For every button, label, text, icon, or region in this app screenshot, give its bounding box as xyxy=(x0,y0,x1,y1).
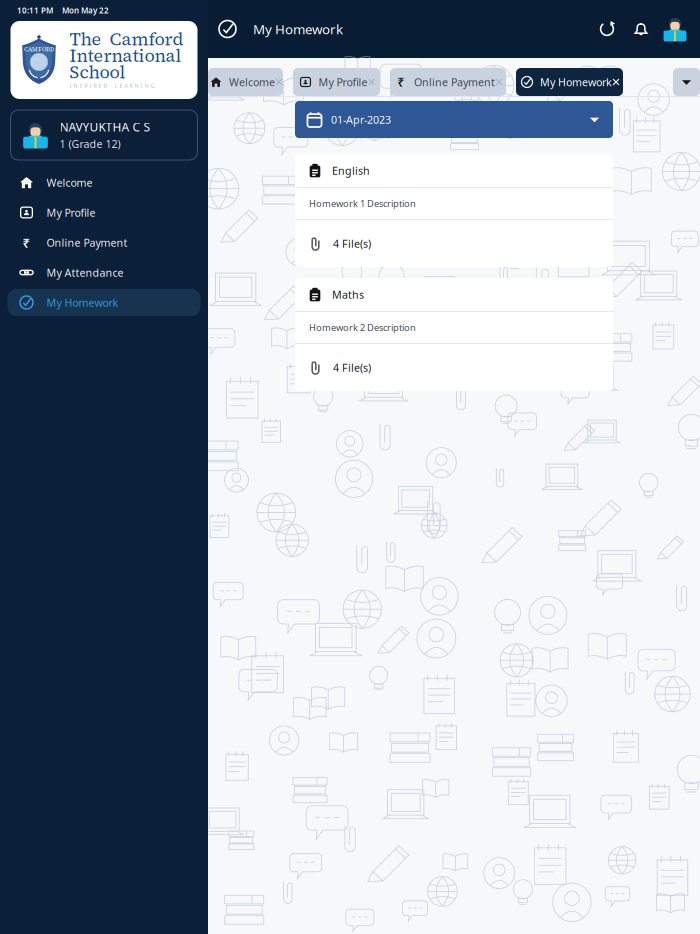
button[interactable]: ₹ xyxy=(390,68,506,96)
staticText: 1 (Grade 12) xyxy=(59,137,120,151)
staticText: Welcome xyxy=(46,175,92,190)
staticText: My Homework xyxy=(46,295,118,310)
button[interactable]: My Homework xyxy=(516,68,623,96)
staticText: Online Payment xyxy=(46,235,127,250)
staticText: International xyxy=(69,43,181,68)
staticText: I N S P I R E D L E A R N I N G xyxy=(69,82,154,89)
button[interactable]: My Profile xyxy=(293,68,380,96)
staticText: Maths xyxy=(332,287,364,302)
button[interactable]: My Attendance xyxy=(7,259,200,286)
staticText: School xyxy=(69,60,125,84)
staticText: Online Payment xyxy=(414,75,495,89)
staticText: My Attendance xyxy=(46,265,123,280)
staticText: Welcome xyxy=(229,75,275,89)
staticText: 10:11 PM xyxy=(17,5,53,16)
staticText: NAVYUKTHA C S xyxy=(59,119,150,135)
staticText: Homework 2 Description xyxy=(309,321,416,334)
staticText: The Camford xyxy=(69,27,183,51)
button[interactable]: Notifications xyxy=(624,12,658,46)
staticText: CAMFORD xyxy=(24,45,54,53)
staticText: English xyxy=(332,163,370,178)
staticText: 01-Apr-2023 xyxy=(331,112,391,127)
staticText: 4 File(s) xyxy=(333,236,371,251)
button[interactable]: Welcome xyxy=(7,169,200,196)
button[interactable]: NAVYUKTHA C S xyxy=(10,110,197,160)
button[interactable]: Welcome xyxy=(208,68,283,96)
button[interactable]: More tabs xyxy=(673,68,700,96)
staticText: Homework 1 Description xyxy=(309,197,416,210)
staticText: ₹ xyxy=(397,74,404,90)
staticText: My Homework xyxy=(540,75,612,89)
button[interactable]: My Homework xyxy=(7,289,200,316)
staticText: 4 File(s) xyxy=(333,360,371,375)
staticText: My Profile xyxy=(318,75,367,89)
staticText: My Homework xyxy=(253,20,343,38)
staticText: Mon May 22 xyxy=(62,5,109,16)
button[interactable]: Profile xyxy=(658,12,692,46)
button[interactable]: Refresh xyxy=(590,12,624,46)
button[interactable]: My Profile xyxy=(7,199,200,226)
staticText: ₹ xyxy=(22,234,30,251)
button[interactable]: ₹ xyxy=(7,229,200,256)
staticText: My Profile xyxy=(46,205,95,220)
